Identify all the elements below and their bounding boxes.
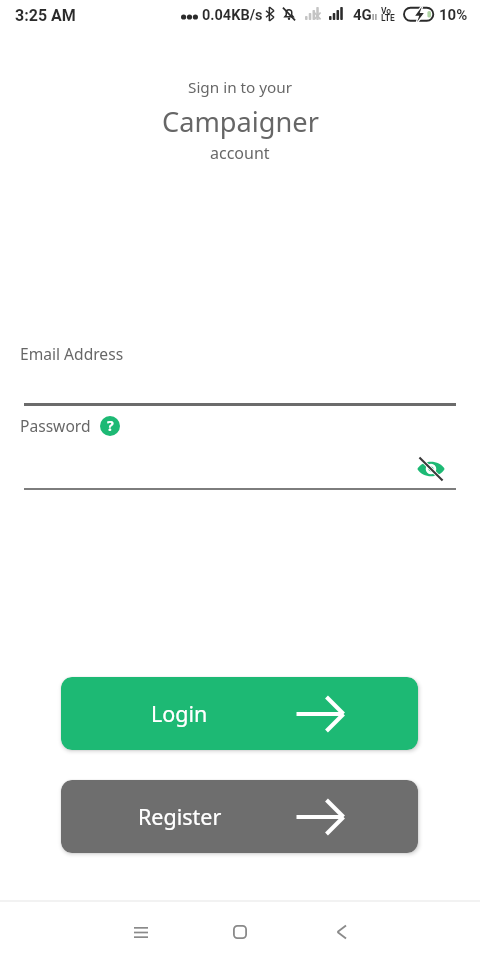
staticText: Password — [20, 415, 91, 436]
button[interactable]: Password help — [100, 416, 120, 436]
button[interactable]: Register — [61, 780, 418, 853]
staticText: Vo — [381, 6, 392, 16]
button[interactable]: Back — [317, 908, 365, 956]
staticText: Sign in to your — [188, 77, 293, 98]
staticText: ? — [107, 416, 114, 435]
button[interactable]: Toggle password visibility — [413, 451, 449, 487]
staticText: 4G — [353, 6, 372, 24]
staticText: Login — [151, 699, 208, 728]
staticText: 0.04KB/s — [202, 7, 263, 24]
button[interactable]: Home — [216, 908, 264, 956]
button[interactable]: Recents — [117, 908, 165, 956]
staticText: 10% — [439, 6, 468, 24]
staticText: Register — [138, 802, 222, 831]
staticText: LTE — [381, 13, 395, 23]
staticText: account — [210, 142, 270, 164]
staticText: 3:25 AM — [15, 6, 76, 25]
button[interactable]: Login — [61, 677, 418, 750]
button[interactable]: Password — [20, 412, 399, 490]
staticText: Email Address — [20, 343, 124, 364]
button[interactable]: Email Address — [20, 340, 459, 406]
staticText: Campaigner — [162, 103, 319, 140]
